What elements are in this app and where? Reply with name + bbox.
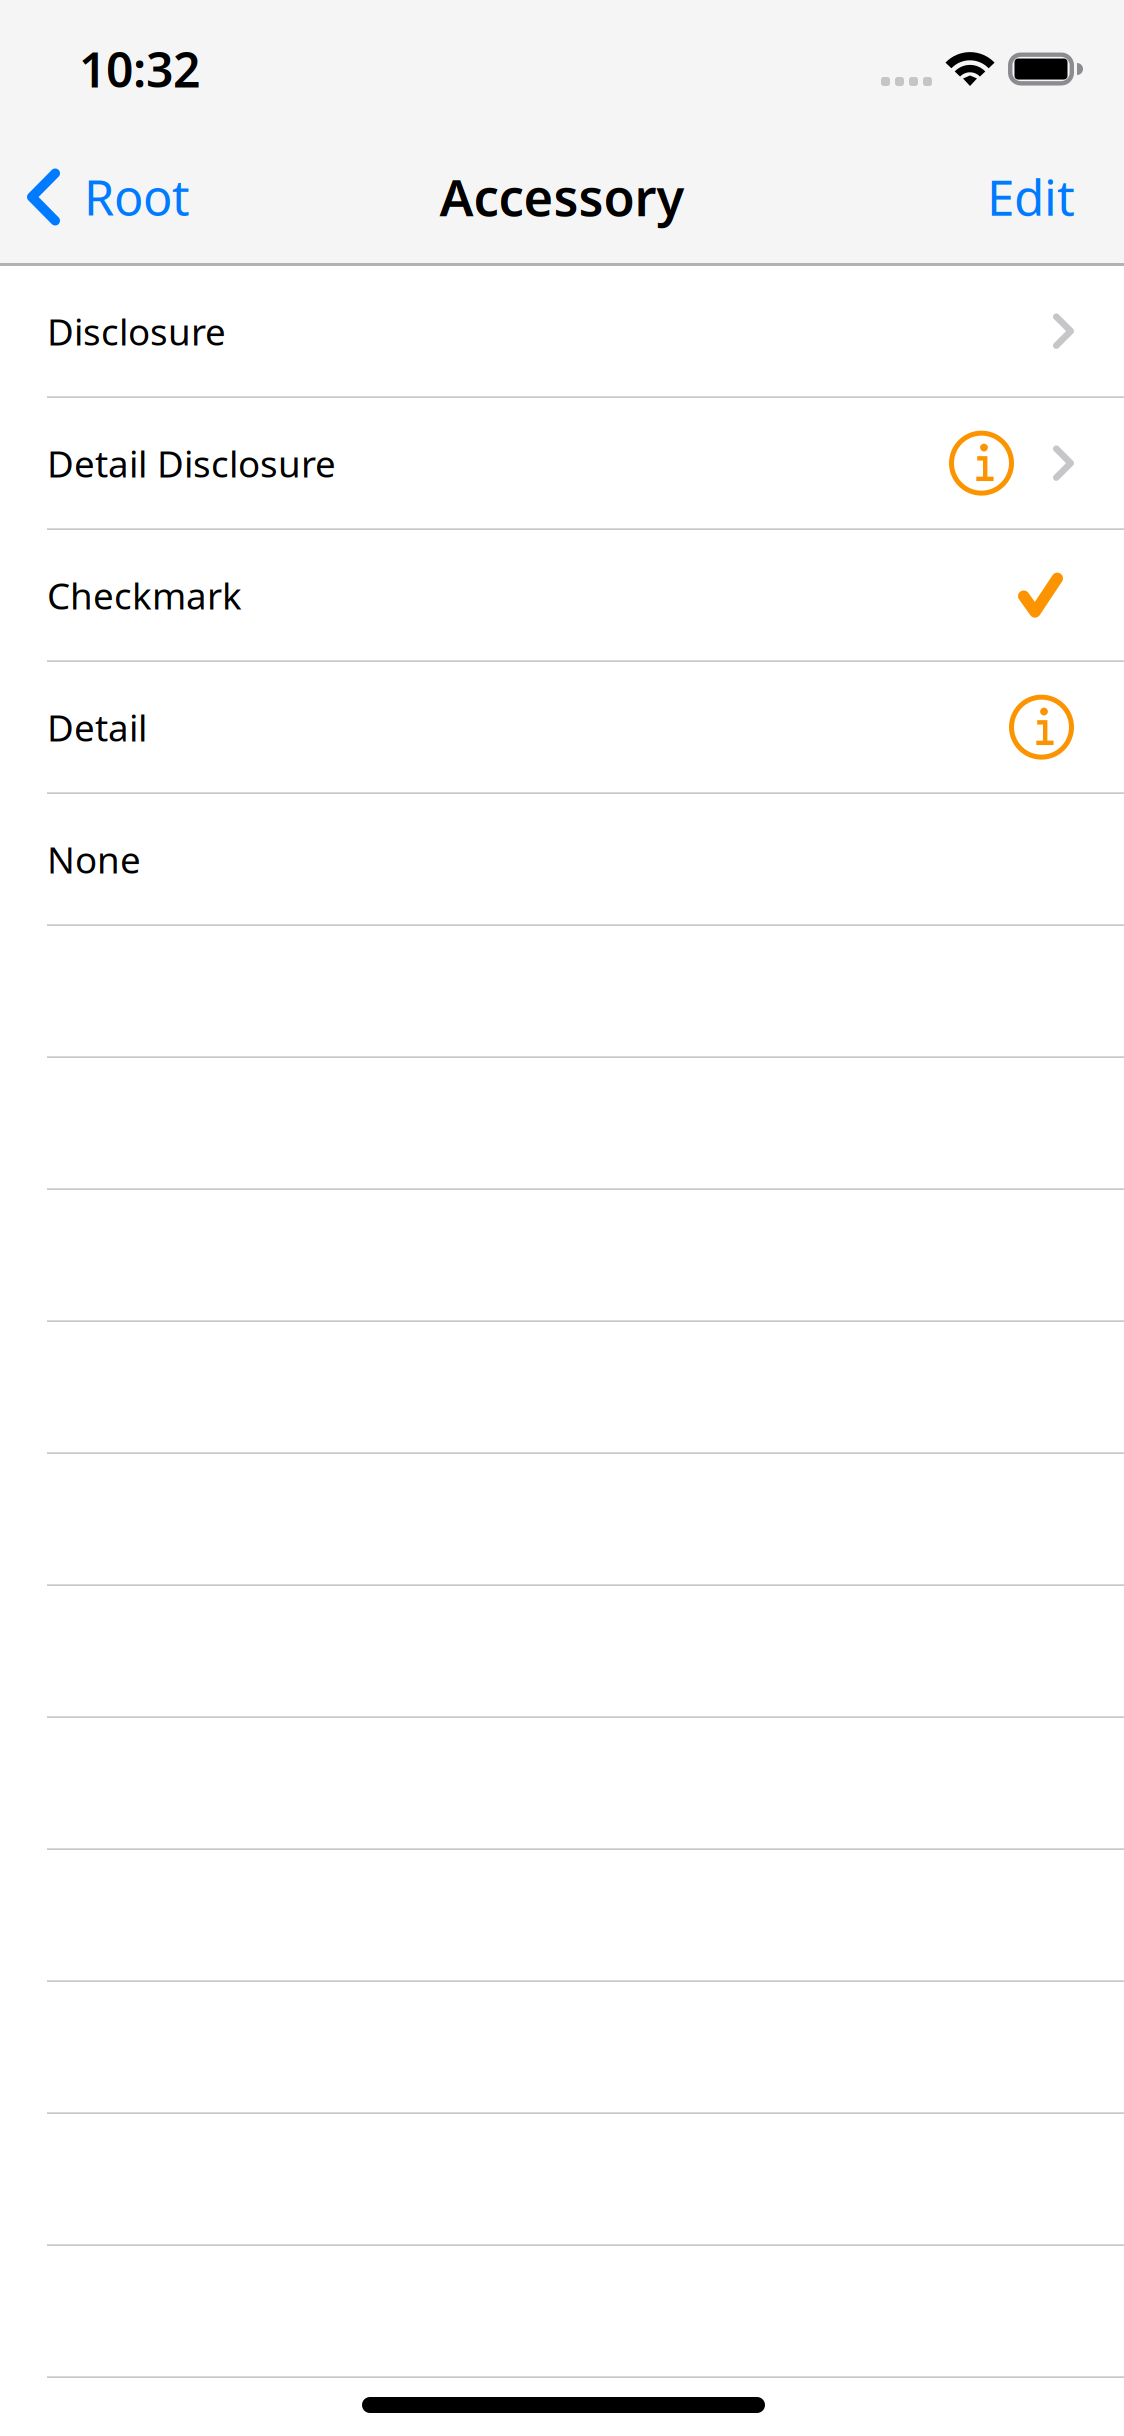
button[interactable]: Disclosure	[0, 266, 1124, 398]
staticText: Detail	[47, 702, 147, 752]
button[interactable]: Edit	[961, 150, 1101, 242]
staticText: Accessory	[439, 163, 684, 230]
button[interactable]: More Info	[949, 431, 1014, 496]
staticText: Root	[84, 163, 190, 230]
button[interactable]: None	[0, 794, 1124, 926]
staticText: None	[47, 834, 141, 884]
button[interactable]: Detail	[0, 662, 1124, 794]
staticText: Edit	[987, 163, 1075, 230]
staticText: Detail Disclosure	[47, 438, 336, 488]
button[interactable]: Root	[0, 150, 208, 242]
staticText: Disclosure	[47, 306, 226, 356]
button[interactable]: More Info	[1009, 695, 1074, 760]
button[interactable]: Detail Disclosure	[0, 398, 1124, 530]
staticText: 10:32	[79, 37, 200, 101]
staticText: Checkmark	[47, 570, 242, 620]
button[interactable]: Checkmark	[0, 530, 1124, 662]
